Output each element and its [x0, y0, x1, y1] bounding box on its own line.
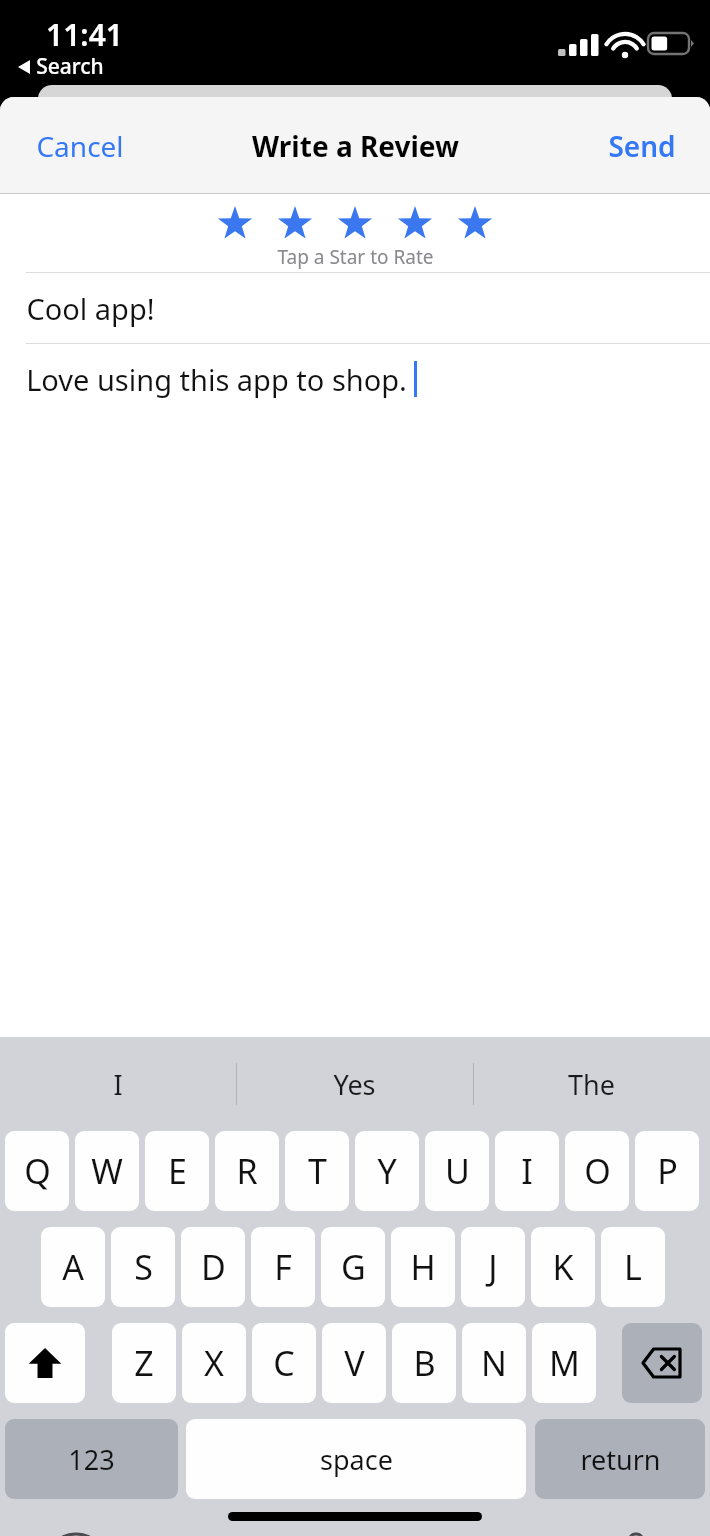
button[interactable]: F — [251, 1227, 315, 1307]
button[interactable]: Send — [574, 109, 710, 183]
staticText: V — [344, 1340, 365, 1386]
button[interactable]: J — [461, 1227, 525, 1307]
staticText: N — [481, 1340, 507, 1386]
button[interactable]: B — [392, 1323, 456, 1403]
button[interactable]: Rate 5 stars — [445, 204, 505, 242]
staticText: Q — [24, 1148, 51, 1194]
staticText: The — [568, 1066, 615, 1103]
button[interactable]: M — [532, 1323, 596, 1403]
button[interactable]: Rate 3 stars — [325, 204, 385, 242]
staticText: Write a Review — [252, 127, 459, 165]
staticText: R — [236, 1148, 258, 1194]
button[interactable]: O — [565, 1131, 629, 1211]
button[interactable]: Cancel — [0, 109, 160, 183]
staticText: I — [521, 1148, 533, 1194]
button[interactable]: I — [0, 1037, 236, 1131]
button[interactable]: S — [111, 1227, 175, 1307]
staticText: S — [134, 1244, 153, 1290]
staticText: P — [657, 1148, 678, 1194]
button[interactable]: Yes — [236, 1037, 473, 1131]
staticText: Cool app! — [26, 289, 155, 328]
staticText: F — [274, 1244, 292, 1290]
staticText: A — [62, 1244, 84, 1290]
button[interactable]: Shift — [5, 1323, 85, 1403]
staticText: Love using this app to shop. — [26, 360, 407, 399]
staticText: B — [413, 1340, 436, 1386]
button[interactable]: return — [535, 1419, 705, 1499]
staticText: H — [410, 1244, 436, 1290]
button[interactable]: K — [531, 1227, 595, 1307]
staticText: G — [341, 1244, 366, 1290]
button[interactable]: W — [75, 1131, 139, 1211]
staticText: I — [113, 1066, 123, 1103]
button[interactable]: N — [462, 1323, 526, 1403]
staticText: Yes — [333, 1066, 376, 1103]
button[interactable]: G — [321, 1227, 385, 1307]
staticText: return — [580, 1441, 661, 1478]
staticText: Cancel — [36, 127, 124, 165]
button[interactable]: Rate 2 stars — [265, 204, 325, 242]
staticText: K — [552, 1244, 574, 1290]
staticText: Tap a Star to Rate — [277, 244, 434, 270]
button[interactable]: Rate 1 stars — [205, 204, 265, 242]
button[interactable]: Y — [355, 1131, 419, 1211]
button[interactable]: space — [186, 1419, 526, 1499]
button[interactable]: 123 — [5, 1419, 178, 1499]
button[interactable]: U — [425, 1131, 489, 1211]
staticText: T — [308, 1148, 327, 1194]
button[interactable]: The — [473, 1037, 710, 1131]
button[interactable]: Backspace — [622, 1323, 702, 1403]
button[interactable]: T — [285, 1131, 349, 1211]
button[interactable]: R — [215, 1131, 279, 1211]
staticText: 123 — [68, 1441, 115, 1478]
staticText: Z — [134, 1340, 154, 1386]
staticText: W — [91, 1148, 123, 1194]
button[interactable]: H — [391, 1227, 455, 1307]
staticText: U — [445, 1148, 470, 1194]
staticText: C — [273, 1340, 295, 1386]
button[interactable]: Q — [5, 1131, 69, 1211]
button[interactable]: Emoji — [48, 1533, 104, 1536]
staticText: D — [201, 1244, 226, 1290]
staticText: Send — [608, 127, 676, 165]
button[interactable]: A — [41, 1227, 105, 1307]
button[interactable]: L — [601, 1227, 665, 1307]
button[interactable]: D — [181, 1227, 245, 1307]
button[interactable]: Rate 4 stars — [385, 204, 445, 242]
staticText: X — [204, 1340, 224, 1386]
staticText: J — [488, 1244, 498, 1290]
button[interactable]: I — [495, 1131, 559, 1211]
button[interactable]: E — [145, 1131, 209, 1211]
button[interactable]: P — [635, 1131, 699, 1211]
button[interactable]: C — [252, 1323, 316, 1403]
staticText: M — [549, 1340, 580, 1386]
button[interactable]: Dictation — [608, 1533, 664, 1536]
staticText: 11:41 — [46, 14, 123, 55]
staticText: O — [584, 1148, 611, 1194]
staticText: L — [624, 1244, 642, 1290]
staticText: E — [168, 1148, 187, 1194]
button[interactable]: Love using this app to shop. — [0, 344, 710, 414]
staticText: space — [320, 1441, 393, 1478]
button[interactable]: Z — [112, 1323, 176, 1403]
staticText: Search — [36, 52, 104, 81]
staticText: Y — [377, 1148, 397, 1194]
button[interactable]: Search — [14, 50, 108, 83]
button[interactable]: V — [322, 1323, 386, 1403]
button[interactable]: X — [182, 1323, 246, 1403]
button[interactable]: Cool app! — [0, 273, 710, 343]
